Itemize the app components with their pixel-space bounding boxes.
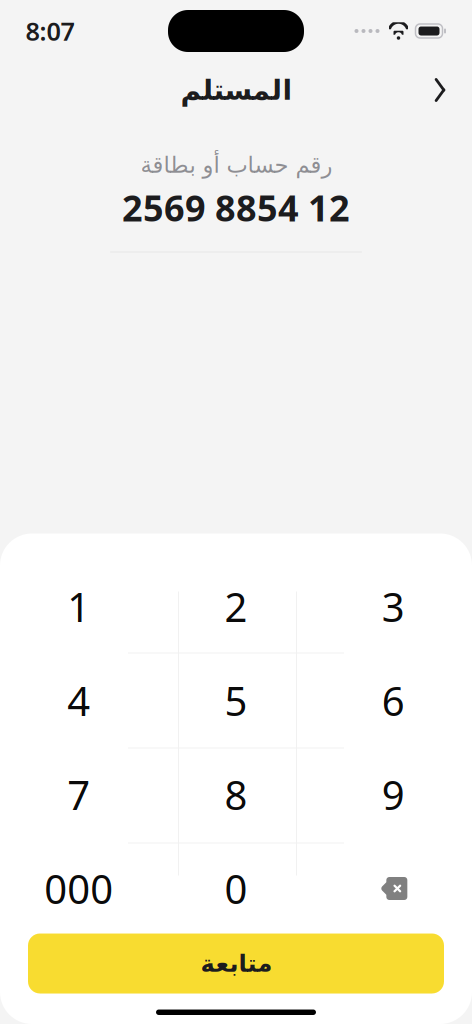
- staticText: المستلم: [180, 74, 292, 106]
- button[interactable]: 7: [0, 747, 157, 841]
- staticText: 9: [382, 768, 405, 821]
- button[interactable]: 6: [315, 653, 472, 747]
- staticText: 8:07: [25, 14, 74, 48]
- button[interactable]: 8: [157, 747, 315, 841]
- staticText: 6: [382, 674, 405, 727]
- button[interactable]: 3: [315, 559, 472, 653]
- staticText: 2569 8854 12: [122, 184, 350, 231]
- button[interactable]: 1: [0, 559, 157, 653]
- staticText: 7: [67, 768, 90, 821]
- staticText: 1: [67, 580, 90, 633]
- button[interactable]: حذف: [315, 841, 472, 935]
- button[interactable]: رجوع: [418, 68, 462, 112]
- staticText: 5: [224, 674, 247, 727]
- staticText: 0: [224, 862, 247, 915]
- staticText: 2: [224, 580, 247, 633]
- button[interactable]: 000: [0, 841, 157, 935]
- button[interactable]: 4: [0, 653, 157, 747]
- staticText: 8: [224, 768, 247, 821]
- staticText: 000: [44, 862, 113, 915]
- button[interactable]: 9: [315, 747, 472, 841]
- button[interactable]: 5: [157, 653, 315, 747]
- button[interactable]: 0: [157, 841, 315, 935]
- staticText: 3: [382, 580, 405, 633]
- staticText: رقم حساب أو بطاقة: [140, 152, 332, 178]
- button[interactable]: متابعة: [28, 933, 444, 993]
- button[interactable]: 2: [157, 559, 315, 653]
- staticText: 4: [67, 674, 90, 727]
- staticText: متابعة: [200, 950, 272, 977]
